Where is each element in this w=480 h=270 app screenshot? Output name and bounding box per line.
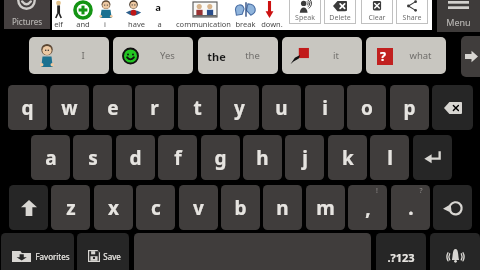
button[interactable]: u (262, 85, 301, 130)
button[interactable]: it (282, 37, 362, 74)
staticText: Favorites (35, 251, 70, 262)
staticText: Delete (324, 13, 356, 23)
staticText: the (207, 49, 226, 64)
button[interactable]: Save (77, 233, 129, 270)
staticText: g (214, 145, 227, 171)
staticText: Yes (160, 49, 175, 62)
staticText: , (365, 195, 371, 221)
button[interactable]: x (94, 185, 133, 230)
button[interactable]: Enter (413, 135, 452, 180)
staticText: o (361, 95, 373, 121)
button[interactable]: Sound settings (430, 233, 480, 270)
staticText: t (193, 95, 202, 121)
button[interactable]: Undo (433, 185, 472, 230)
button[interactable]: m (306, 185, 345, 230)
button[interactable]: Pictures (4, 0, 50, 29)
staticText: Menu (437, 16, 480, 28)
staticText: c (151, 195, 161, 221)
staticText: ! (376, 186, 378, 196)
staticText: p (403, 95, 416, 121)
staticText: Pictures (4, 16, 50, 27)
button[interactable]: f (158, 135, 197, 180)
staticText: and (76, 19, 90, 29)
staticText: a (155, 1, 161, 14)
button[interactable]: e (93, 85, 132, 130)
button[interactable]: a (31, 135, 70, 180)
staticText: d (129, 145, 142, 171)
staticText: Save (103, 251, 121, 262)
button[interactable]: Speak (289, 0, 321, 24)
button[interactable]: n (263, 185, 302, 230)
button[interactable]: t (178, 85, 217, 130)
button[interactable]: w (50, 85, 89, 130)
staticText: h (256, 145, 269, 171)
button[interactable]: g (201, 135, 240, 180)
button[interactable]: s (73, 135, 112, 180)
button[interactable]: p (390, 85, 429, 130)
button[interactable]: Backspace (432, 85, 473, 130)
staticText: z (66, 195, 76, 221)
button[interactable]: b (221, 185, 260, 230)
button[interactable]: z (51, 185, 90, 230)
staticText: Speak (289, 13, 321, 23)
button[interactable]: i (305, 85, 344, 130)
button[interactable]: Shift (9, 185, 48, 230)
button[interactable]: ! (348, 185, 387, 230)
staticText: elf (54, 19, 63, 29)
staticText: .?123 (376, 250, 426, 265)
staticText: have (128, 19, 145, 29)
button[interactable]: I (29, 37, 109, 74)
staticText: i (104, 19, 106, 29)
button[interactable]: the (198, 37, 278, 74)
staticText: k (342, 145, 354, 171)
staticText: v (193, 195, 204, 221)
staticText: what (409, 49, 432, 62)
button[interactable]: Yes (113, 37, 193, 74)
button[interactable]: y (220, 85, 259, 130)
button[interactable]: Delete (324, 0, 356, 24)
staticText: s (88, 145, 98, 171)
button[interactable]: ? (391, 185, 430, 230)
staticText: e (107, 95, 119, 121)
staticText: m (316, 195, 335, 221)
button[interactable]: d (116, 135, 155, 180)
staticText: . (408, 195, 414, 221)
staticText: b (234, 195, 247, 221)
staticText: u (275, 95, 288, 121)
staticText: ? (419, 186, 423, 196)
staticText: Clear (361, 13, 393, 23)
button[interactable]: q (8, 85, 47, 130)
staticText: l (387, 145, 393, 171)
staticText: down. (261, 19, 283, 29)
staticText: I (81, 49, 85, 62)
button[interactable]: v (179, 185, 218, 230)
staticText: q (21, 95, 34, 121)
staticText: i (322, 95, 328, 121)
button[interactable]: h (243, 135, 282, 180)
staticText: it (333, 49, 339, 62)
staticText: f (174, 145, 182, 171)
button[interactable]: c (136, 185, 175, 230)
button[interactable]: .?123 (376, 233, 426, 270)
button[interactable]: Favorites (1, 233, 74, 270)
button[interactable]: j (285, 135, 324, 180)
button[interactable]: Clear (361, 0, 393, 24)
staticText: x (108, 195, 119, 221)
staticText: break (235, 19, 256, 29)
staticText: j (302, 145, 308, 171)
button[interactable]: More suggestions (461, 36, 480, 77)
staticText: r (150, 95, 159, 121)
button[interactable]: Menu (437, 0, 480, 32)
staticText: communication (176, 19, 231, 29)
staticText: y (234, 95, 245, 121)
button[interactable]: Share (396, 0, 428, 24)
button[interactable]: k (328, 135, 367, 180)
button[interactable]: what (366, 37, 446, 74)
staticText: Share (396, 13, 428, 23)
button[interactable]: l (370, 135, 409, 180)
staticText: ? (380, 48, 386, 65)
button[interactable]: o (347, 85, 386, 130)
button[interactable]: r (135, 85, 174, 130)
staticText: a (157, 19, 162, 29)
